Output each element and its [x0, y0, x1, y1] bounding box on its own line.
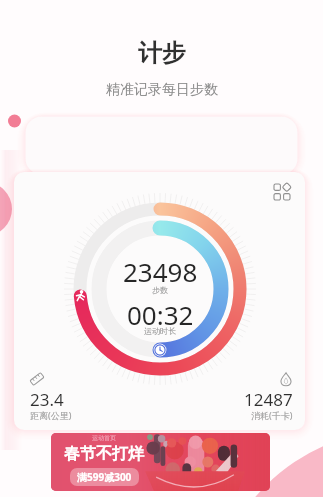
staticText: 距离(公里) [30, 409, 72, 421]
button[interactable]: More tools [269, 179, 295, 205]
staticText: 计步 [138, 38, 186, 68]
staticText: 运动时长 [144, 326, 176, 336]
staticText: 23.4 [30, 388, 64, 411]
button[interactable]: 运动首页 [51, 433, 270, 491]
staticText: 消耗(千卡) [251, 409, 293, 421]
staticText: 春节不打烊 [64, 444, 144, 464]
staticText: 精准记录每日步数 [106, 81, 218, 99]
staticText: 运动首页 [92, 434, 116, 442]
staticText: 满599减300 [77, 470, 132, 484]
staticText: 12487 [244, 388, 293, 411]
staticText: 步数 [152, 285, 168, 295]
staticText: 23498 [123, 254, 198, 289]
staticText: 00:32 [127, 297, 194, 332]
